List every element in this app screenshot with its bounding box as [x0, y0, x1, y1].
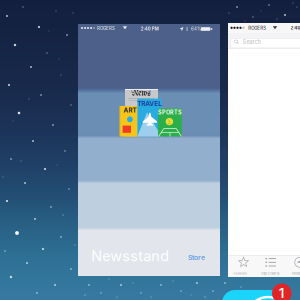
staticText: ROGERS: [248, 25, 266, 31]
staticText: 2:40 PM: [141, 26, 159, 31]
staticText: News: [131, 89, 151, 98]
button[interactable]: Featured: [228, 256, 257, 276]
staticText: 2:40 PM: [290, 25, 300, 31]
button[interactable]: [231, 38, 300, 48]
button[interactable]: Store: [183, 251, 209, 265]
staticText: 64%: [191, 26, 201, 32]
button[interactable]: Top Charts: [257, 256, 285, 276]
staticText: Featured: [233, 271, 247, 275]
staticText: Store: [188, 253, 205, 262]
staticText: Near Me: [292, 271, 300, 276]
staticText: SPORTS: [158, 109, 182, 116]
staticText: 1: [279, 285, 285, 300]
staticText: ART: [124, 106, 137, 114]
staticText: Top Charts: [261, 271, 280, 276]
staticText: ROGERS: [97, 26, 115, 31]
button[interactable]: Near Me: [285, 256, 300, 276]
button[interactable]: App Store: [222, 290, 284, 300]
staticText: Search: [242, 39, 260, 45]
staticText: TRAVEL: [137, 100, 162, 108]
staticText: Newsstand: [91, 247, 169, 265]
